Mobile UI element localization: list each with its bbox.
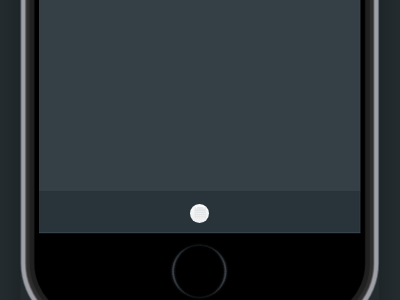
button[interactable]: Calendar (190, 204, 209, 223)
